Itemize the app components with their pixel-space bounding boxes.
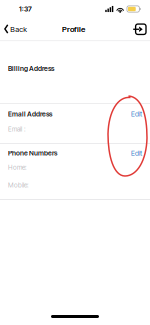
- button[interactable]: Sign out: [128, 20, 150, 38]
- staticText: 1:37: [19, 5, 32, 13]
- button[interactable]: Edit: [124, 108, 150, 120]
- staticText: Edit: [131, 110, 142, 118]
- staticText: Phone Numbers: [8, 149, 57, 157]
- staticText: Back: [10, 25, 27, 34]
- button[interactable]: Edit: [124, 147, 150, 159]
- button[interactable]: Back: [0, 21, 32, 38]
- staticText: Profile: [62, 24, 85, 34]
- staticText: Home:: [8, 163, 27, 171]
- staticText: Edit: [131, 149, 142, 157]
- staticText: Mobile:: [8, 181, 29, 189]
- staticText: Email :: [8, 125, 26, 133]
- staticText: Billing Address: [8, 64, 54, 72]
- staticText: Email Address: [8, 110, 52, 118]
